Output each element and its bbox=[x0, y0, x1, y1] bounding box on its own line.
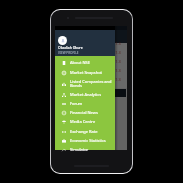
staticText: -1.3 bbox=[114, 50, 121, 55]
button[interactable]: Simulator bbox=[55, 145, 115, 154]
staticText: Market Analytics bbox=[70, 92, 114, 97]
staticText: Media Centre bbox=[70, 119, 114, 124]
button[interactable]: Market Snapshot bbox=[55, 68, 115, 77]
staticText: -1.3 bbox=[114, 41, 121, 46]
staticText: DANGCEM bbox=[57, 59, 75, 64]
staticText: VIEW PROFILE bbox=[58, 51, 79, 55]
button[interactable]: Market Analytics bbox=[55, 90, 115, 99]
staticText: Market Snapshot bbox=[70, 70, 114, 75]
staticText: DANGCEM bbox=[57, 77, 75, 82]
button[interactable]: Open navigation drawer bbox=[58, 34, 64, 40]
button[interactable] bbox=[56, 89, 126, 97]
button[interactable]: DANGCEM bbox=[55, 61, 127, 70]
staticText: DANGCEM bbox=[57, 41, 75, 46]
staticText: Forum bbox=[70, 101, 114, 106]
staticText: Economic Statistics bbox=[70, 138, 114, 143]
button[interactable]: DANGCEM bbox=[55, 79, 127, 88]
button[interactable]: About NSE bbox=[55, 58, 115, 67]
button[interactable]: Forum bbox=[55, 99, 115, 108]
staticText: -1.3 bbox=[114, 68, 121, 73]
staticText: Financial News bbox=[70, 110, 114, 115]
button[interactable]: Financial News bbox=[55, 108, 115, 117]
staticText: -1.3 bbox=[114, 77, 121, 82]
staticText: DANGCEM bbox=[57, 50, 75, 55]
staticText: -1.3 bbox=[114, 59, 121, 64]
staticText: Listed Companies and Bonds bbox=[70, 79, 114, 89]
button[interactable]: DANGCEM bbox=[55, 70, 127, 79]
button[interactable]: Media Centre bbox=[55, 117, 115, 126]
staticText: Simulator bbox=[70, 147, 114, 152]
button[interactable]: Listed Companies and Bonds bbox=[55, 77, 115, 90]
button[interactable]: Economic Statistics bbox=[55, 136, 115, 145]
staticText: Obadiah Okure bbox=[58, 45, 83, 50]
staticText: Exchange Rate bbox=[70, 129, 114, 134]
button[interactable]: DANGCEM bbox=[55, 43, 127, 52]
staticText: DANGCEM bbox=[57, 68, 75, 73]
button[interactable]: Obadiah Okure bbox=[55, 30, 115, 56]
staticText: About NSE bbox=[70, 60, 114, 65]
button[interactable]: Exchange Rate bbox=[55, 127, 115, 136]
button[interactable]: DANGCEM bbox=[55, 52, 127, 61]
